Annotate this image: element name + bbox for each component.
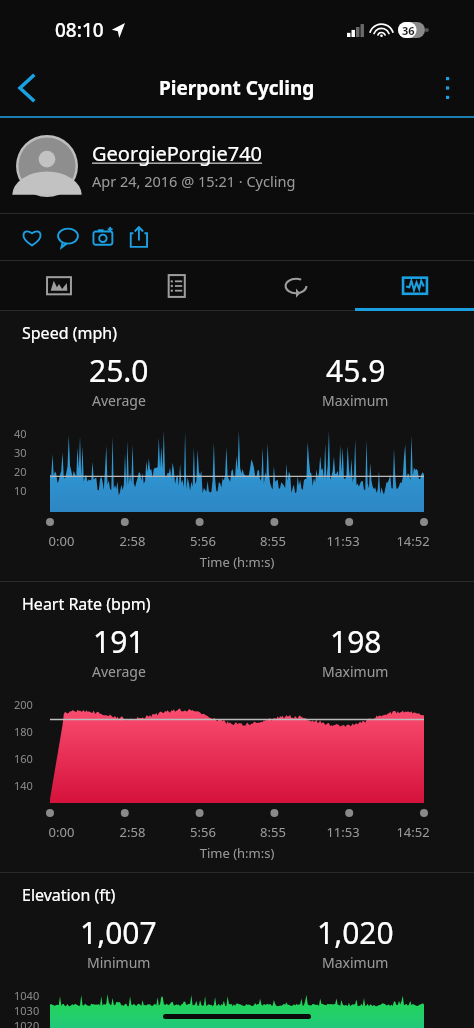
staticText: 0:00 — [26, 823, 97, 841]
staticText: 11:53 — [308, 532, 378, 550]
staticText: 11:53 — [308, 823, 378, 841]
staticText: 1,007 — [80, 912, 157, 953]
staticText: 160 — [14, 751, 33, 766]
staticText: Time (h:m:s) — [0, 844, 474, 862]
staticText: 08:10 — [55, 17, 104, 43]
staticText: Maximum — [322, 391, 389, 410]
staticText: 180 — [14, 724, 33, 739]
staticText: 30 — [14, 445, 27, 460]
staticText: Average — [92, 662, 146, 681]
staticText: Minimum — [87, 953, 151, 972]
staticText: 140 — [14, 778, 33, 793]
staticText: Time (h:m:s) — [0, 553, 474, 571]
staticText: 1030 — [14, 1003, 40, 1018]
button[interactable]: Laps — [236, 261, 355, 311]
staticText: 0:00 — [26, 532, 97, 550]
staticText: 1040 — [14, 988, 40, 1003]
staticText: 200 — [14, 697, 33, 712]
button[interactable]: GeorgiePorgie740 — [0, 118, 474, 213]
staticText: 2:58 — [97, 823, 168, 841]
staticText: Pierpont Cycling — [159, 75, 315, 101]
staticText: 20 — [14, 464, 27, 479]
staticText: 10 — [14, 483, 27, 498]
staticText: Maximum — [322, 662, 389, 681]
staticText: GeorgiePorgie740 — [92, 140, 263, 167]
staticText: 40 — [14, 426, 27, 441]
staticText: 198 — [330, 621, 382, 662]
staticText: 45.9 — [326, 350, 386, 391]
staticText: Maximum — [322, 953, 389, 972]
button[interactable]: Back — [0, 62, 52, 114]
staticText: 5:56 — [168, 532, 238, 550]
staticText: 1020 — [14, 1018, 40, 1028]
button[interactable]: Like — [14, 217, 50, 257]
staticText: 1,020 — [317, 912, 394, 953]
staticText: 14:52 — [378, 823, 448, 841]
staticText: 8:55 — [238, 532, 308, 550]
button[interactable]: Map — [0, 261, 118, 311]
staticText: Speed (mph) — [22, 322, 117, 344]
staticText: Elevation (ft) — [22, 884, 116, 906]
staticText: 14:52 — [378, 532, 448, 550]
button[interactable]: Add photo — [86, 217, 122, 257]
staticText: 8:55 — [238, 823, 308, 841]
button[interactable]: More options — [422, 62, 474, 114]
staticText: 25.0 — [89, 350, 149, 391]
button[interactable]: Details — [118, 261, 236, 311]
staticText: 5:56 — [168, 823, 238, 841]
staticText: Average — [92, 391, 146, 410]
staticText: 2:58 — [97, 532, 168, 550]
button[interactable]: Charts — [355, 261, 474, 311]
staticText: Heart Rate (bpm) — [22, 593, 151, 615]
button[interactable]: Share — [122, 217, 158, 257]
button[interactable]: Comment — [50, 217, 86, 257]
staticText: 36 — [402, 23, 415, 38]
staticText: 191 — [93, 621, 145, 662]
staticText: Apr 24, 2016 @ 15:21 · Cycling — [92, 171, 296, 191]
